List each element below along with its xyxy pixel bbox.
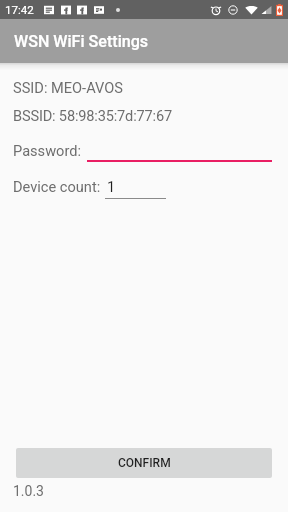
other: Battery charging — [276, 4, 283, 16]
button[interactable]: CONFIRM — [16, 448, 272, 478]
other: Mobile signal — [261, 4, 272, 15]
staticText: WSN WiFi Settings — [14, 32, 149, 51]
other: More notifications — [116, 8, 120, 12]
staticText: Device count: — [13, 178, 101, 195]
button[interactable]: 1 — [105, 173, 166, 199]
staticText: 17:42 — [5, 3, 34, 17]
staticText: CONFIRM — [118, 456, 171, 470]
staticText: BSSID: 58:98:35:7d:77:67 — [13, 107, 172, 124]
staticText: 1.0.3 — [13, 483, 44, 499]
staticText: Password: — [13, 142, 81, 159]
staticText: SSID: MEO-AVOS — [13, 79, 123, 96]
button[interactable]: Password field — [87, 136, 272, 164]
other: Message notification — [94, 5, 104, 15]
other: Facebook notification — [77, 5, 87, 15]
other: Do not disturb — [228, 5, 238, 15]
other: Facebook notification — [61, 5, 71, 15]
other: News notification — [44, 5, 54, 15]
other: Alarm set — [211, 5, 221, 15]
staticText: 1 — [107, 178, 116, 195]
other: Wi-Fi signal — [245, 4, 258, 15]
